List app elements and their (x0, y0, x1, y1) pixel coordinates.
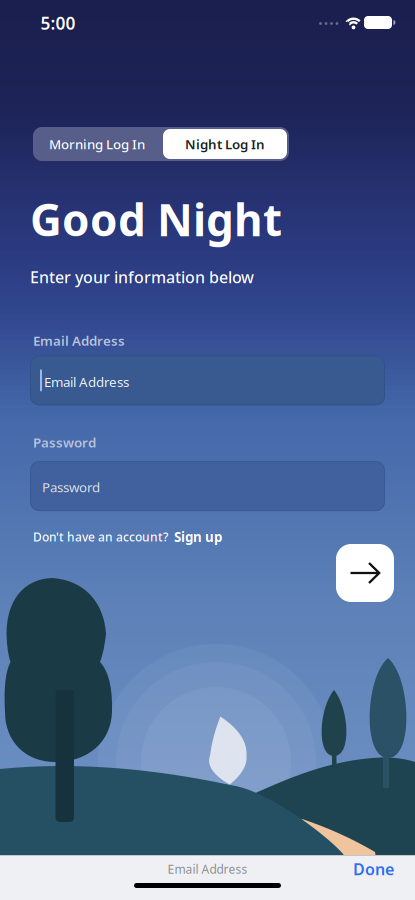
staticText: Enter your information below (30, 266, 254, 288)
staticText: Done (353, 858, 394, 880)
staticText: Email Address (44, 373, 129, 391)
staticText: Email Address (167, 861, 247, 877)
staticText: Password (33, 433, 96, 451)
button[interactable]: Morning Log In (33, 127, 161, 161)
staticText: Night Log In (185, 135, 265, 153)
staticText: Good Night (30, 190, 282, 248)
button[interactable]: Done (353, 858, 394, 880)
button[interactable]: Email Address (30, 355, 385, 405)
staticText: Don't have an account? (33, 529, 168, 545)
staticText: 5:00 (40, 11, 75, 34)
staticText: Password (42, 478, 100, 496)
button[interactable]: Sign up (174, 528, 222, 546)
staticText: Email Address (33, 332, 125, 349)
button[interactable]: Log in (336, 544, 394, 602)
staticText: Sign up (174, 528, 222, 546)
button[interactable]: Night Log In (163, 129, 287, 159)
button[interactable]: Password (30, 461, 385, 511)
staticText: Morning Log In (49, 135, 145, 153)
